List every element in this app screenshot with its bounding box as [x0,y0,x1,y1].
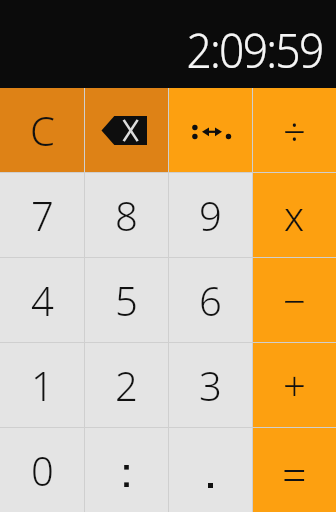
button[interactable]: x [253,173,336,257]
button[interactable]: 5 [85,258,168,342]
staticText: + [283,358,306,412]
button[interactable]: 4 [0,258,84,342]
button[interactable] [169,88,252,172]
staticText: 7 [31,188,54,242]
staticText: 2 [115,358,138,412]
button[interactable]: = [253,428,336,512]
button[interactable]: 6 [169,258,252,342]
staticText: 6 [199,273,222,327]
button[interactable]: 2 [85,343,168,427]
staticText: C [30,103,55,157]
button[interactable]: 9 [169,173,252,257]
staticText: 5 [115,273,138,327]
button[interactable]: + [253,343,336,427]
staticText: x [284,188,305,242]
staticText: 3 [199,358,222,412]
staticText: 0 [31,443,54,497]
staticText: 9 [199,188,222,242]
button[interactable] [85,428,168,512]
staticText: = [282,445,307,504]
button[interactable]: 1 [0,343,84,427]
button[interactable]: 3 [169,343,252,427]
button[interactable]: C [0,88,84,172]
staticText: 8 [115,188,138,242]
staticText: 1 [31,358,54,412]
staticText: 2:09:59 [186,16,323,81]
button[interactable] [85,88,168,172]
staticText: ÷ [283,103,306,157]
button[interactable]: − [253,258,336,342]
button[interactable]: 7 [0,173,84,257]
staticText: 4 [31,273,54,327]
staticText: − [283,273,306,327]
button[interactable]: 8 [85,173,168,257]
button[interactable]: ÷ [253,88,336,172]
button[interactable]: 0 [0,428,84,512]
button[interactable] [169,428,252,512]
